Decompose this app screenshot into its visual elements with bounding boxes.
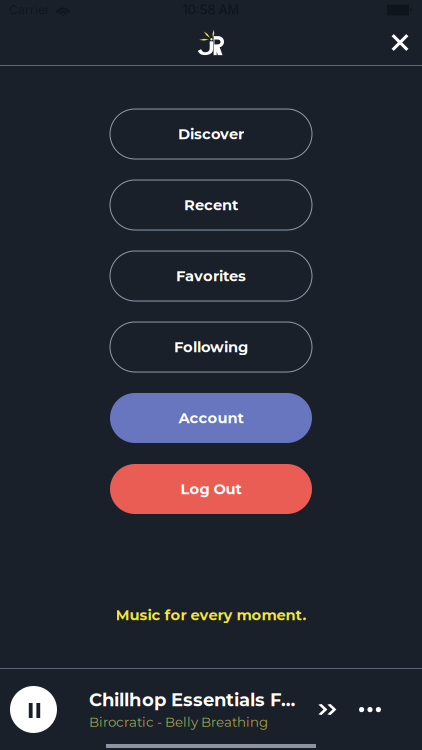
button[interactable]: Pause <box>10 686 57 733</box>
button[interactable]: Following <box>110 322 312 372</box>
staticText: Carrier <box>9 3 50 17</box>
staticText: Music for every moment. <box>115 606 306 624</box>
staticText: Chillhop Essentials F… <box>89 689 295 711</box>
button[interactable]: Recent <box>110 180 312 230</box>
staticText: Following <box>174 338 248 356</box>
button[interactable]: Account <box>110 393 312 443</box>
staticText: Recent <box>184 196 238 214</box>
button[interactable]: More options <box>348 685 390 734</box>
staticText: Log Out <box>180 480 241 498</box>
staticText: Account <box>178 409 243 427</box>
button[interactable]: Log Out <box>110 464 312 514</box>
button[interactable]: Discover <box>110 109 312 159</box>
staticText: Discover <box>178 125 244 143</box>
staticText: 10:58 AM <box>182 2 239 18</box>
staticText: Birocratic - Belly Breathing <box>89 714 268 730</box>
button[interactable]: Favorites <box>110 251 312 301</box>
staticText: Favorites <box>176 267 246 285</box>
button[interactable]: Close <box>378 20 422 64</box>
button[interactable]: Next track <box>308 686 348 733</box>
